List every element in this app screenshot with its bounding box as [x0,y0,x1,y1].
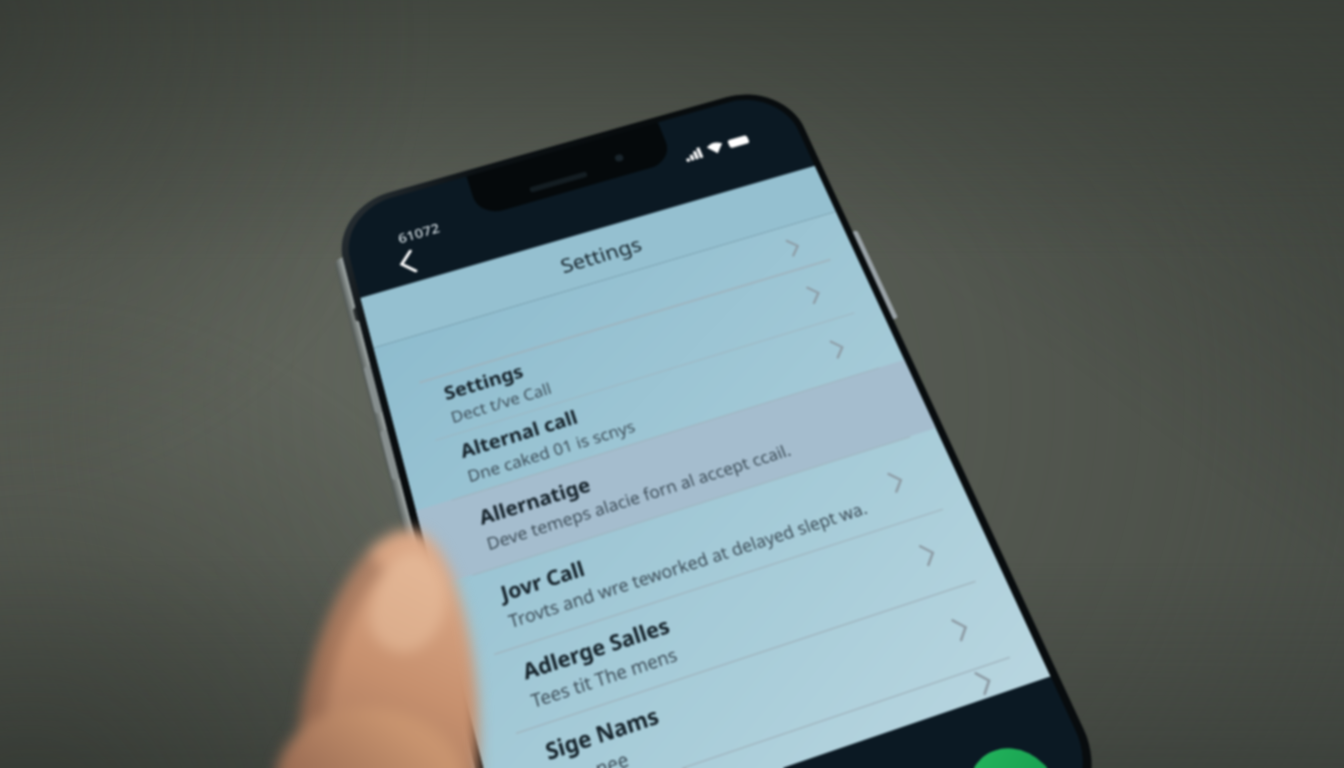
staticText: Alternal call [457,404,581,464]
button[interactable]: Adlerge Salles [456,500,1002,745]
staticText: Dect t/ve Call [448,377,554,428]
staticText: Dne caked 01 is scnys [465,415,638,487]
staticText: Adlerge Salles [519,611,673,687]
button[interactable]: Account [373,212,855,393]
button[interactable]: Settings [360,166,836,348]
button[interactable]: Back [381,239,434,287]
staticText: Allernatige [476,471,594,531]
button[interactable]: Sige Nams [477,572,1037,768]
button[interactable]: Settings [385,252,879,450]
staticText: Jovr Call [497,554,588,608]
staticText: 61072 [396,219,441,247]
button[interactable]: Jovr Call [436,428,969,666]
button[interactable]: Corle Lins [499,647,1051,768]
staticText: Tine nee [551,745,633,768]
staticText: Settings [557,230,645,278]
staticText: Deve temeps alacie forn al accept ccail. [484,438,795,555]
button[interactable]: Allernatige [416,360,936,586]
staticText: Settings [441,359,526,406]
staticText: Sige Nams [542,700,663,767]
staticText: Trovts and wre teworked at delayed slept… [506,496,871,634]
button[interactable]: Alternal call [400,305,904,511]
button[interactable]: Call [954,736,1069,768]
staticText: Tees tit The mens [528,642,680,714]
